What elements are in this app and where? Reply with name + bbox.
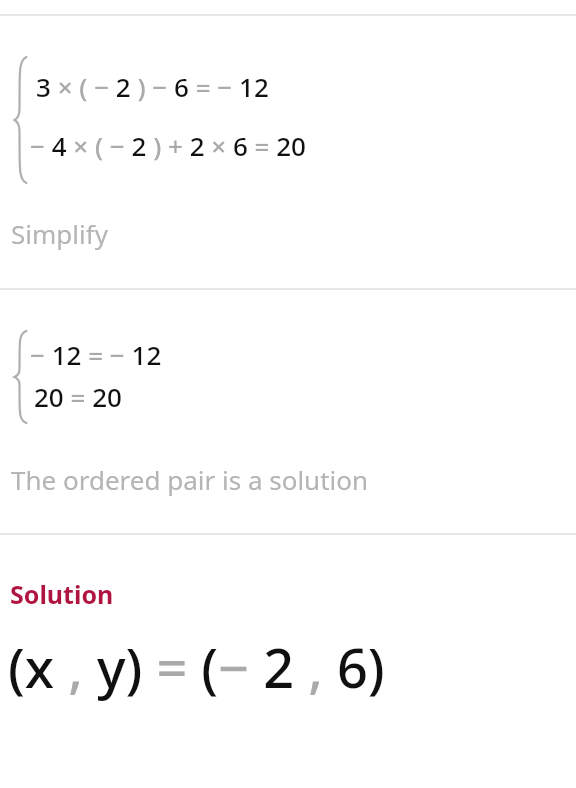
staticText: − 12 = − 12 <box>30 337 162 372</box>
button[interactable]: Simplify <box>11 216 108 251</box>
staticText: (x , y) = (− 2 , 6) <box>8 630 385 704</box>
button[interactable]: Solution <box>10 577 114 611</box>
staticText: 3 × ( − 2 ) − 6 = − 12 <box>36 69 269 104</box>
button[interactable]: The ordered pair is a solution <box>11 462 369 497</box>
staticText: 20 = 20 <box>34 379 122 414</box>
staticText: − 4 × ( − 2 ) + 2 × 6 = 20 <box>30 128 306 163</box>
